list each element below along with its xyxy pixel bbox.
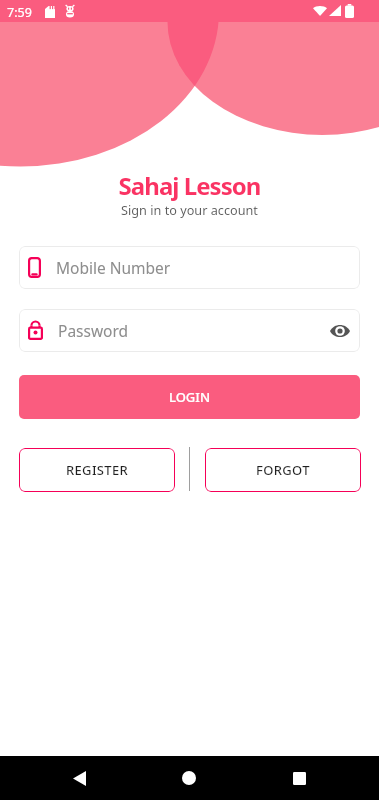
staticText: LOGIN <box>169 388 211 406</box>
staticText: REGISTER <box>66 461 129 479</box>
staticText: Sign in to your account <box>0 201 379 218</box>
button[interactable]: Mobile Number <box>19 246 360 289</box>
staticText: FORGOT <box>256 461 310 479</box>
staticText: Sahaj Lesson <box>0 169 379 202</box>
button[interactable]: LOGIN <box>19 375 360 419</box>
staticText: Mobile Number <box>56 257 171 278</box>
button[interactable]: REGISTER <box>19 448 175 492</box>
button[interactable]: FORGOT <box>205 448 361 492</box>
staticText: Password <box>58 320 129 341</box>
button[interactable]: Password <box>19 309 360 352</box>
button[interactable]: Back <box>57 756 101 800</box>
button[interactable]: Recent apps <box>277 756 321 800</box>
staticText: 7:59 <box>7 4 32 21</box>
button[interactable]: Show password <box>330 321 350 341</box>
button[interactable]: Home <box>167 756 211 800</box>
